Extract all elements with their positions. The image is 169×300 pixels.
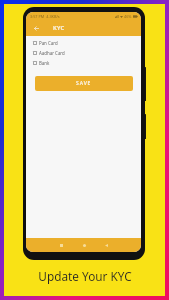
staticText: SAVE [76,80,92,87]
button[interactable]: Pan Card [26,38,141,48]
staticText: Bank [39,60,50,66]
button[interactable]: SAVE [35,76,133,91]
staticText: KYC [53,24,65,32]
staticText: Aadhar Card [39,50,65,56]
staticText: 3:57 PM 4.3KB/s [30,14,60,19]
button[interactable]: Bank [26,58,141,68]
button[interactable]: Aadhar Card [26,48,141,58]
button[interactable]: Back [26,20,43,36]
staticText: 46% [124,14,132,19]
button[interactable]: Recents [55,239,67,251]
staticText: Pan Card [39,40,58,46]
staticText: Update Your KYC [38,268,132,284]
button[interactable]: Back [100,239,112,251]
button[interactable]: Home [78,239,90,251]
